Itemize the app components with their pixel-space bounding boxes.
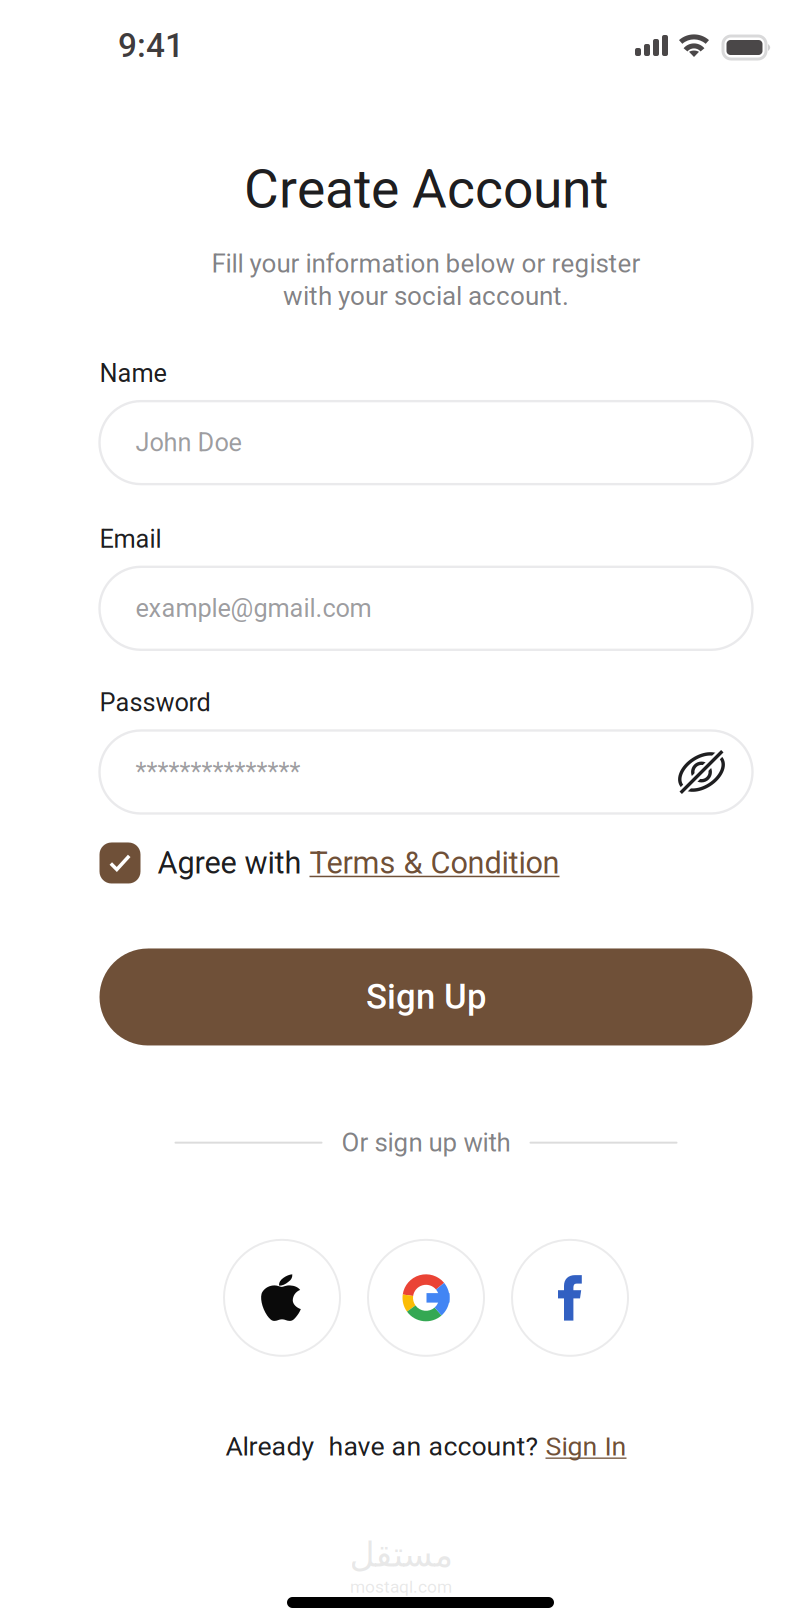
button[interactable]: Agree with — [99, 842, 752, 883]
button[interactable]: Sign up with Facebook — [512, 1240, 628, 1356]
staticText: mostaql.com — [350, 1577, 452, 1597]
staticText: Sign In — [545, 1431, 626, 1462]
button[interactable]: Sign Up — [99, 948, 752, 1045]
button[interactable]: Sign up with Apple — [224, 1240, 340, 1356]
staticText: Fill your information below or register — [211, 248, 640, 279]
staticText: example@gmail.com — [135, 593, 371, 623]
button[interactable]: Sign In — [545, 1431, 626, 1462]
staticText: Create Account — [244, 158, 608, 220]
staticText: with your social account. — [283, 281, 569, 311]
staticText: مستقل — [349, 1534, 453, 1575]
staticText: Sign Up — [366, 977, 486, 1017]
button[interactable]: Show password — [674, 745, 728, 799]
staticText: Terms & Condition — [309, 845, 559, 881]
staticText: Agree with — [157, 845, 309, 881]
staticText: John Doe — [135, 428, 241, 457]
staticText: Email — [99, 524, 161, 554]
staticText: Name — [99, 358, 166, 388]
button[interactable]: Sign up with Google — [368, 1240, 484, 1356]
staticText: 9:41 — [118, 26, 184, 65]
staticText: Or sign up with — [341, 1127, 510, 1158]
staticText: Password — [99, 688, 210, 717]
staticText: Already have an account? — [225, 1431, 545, 1462]
staticText: *************** — [135, 757, 300, 787]
